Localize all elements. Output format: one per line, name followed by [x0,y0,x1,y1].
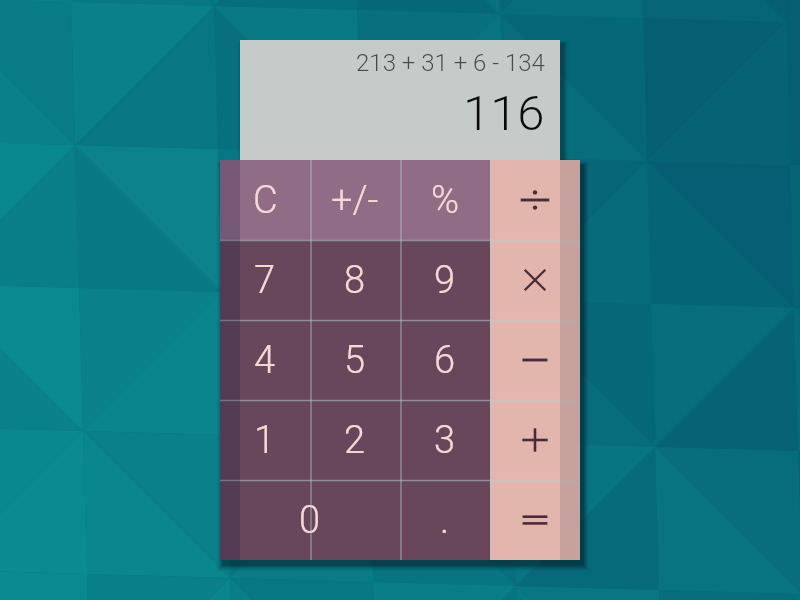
button[interactable]: Add [490,400,580,480]
button[interactable]: Divide [490,160,580,240]
staticText: % [431,178,460,223]
staticText: 6 [434,338,456,383]
button[interactable]: C [220,160,310,240]
button[interactable]: 6 [400,320,490,400]
button[interactable]: 0 [220,480,400,560]
button[interactable]: . [400,480,490,560]
staticText: 213 + 31 + 6 - 134 [356,49,545,77]
button[interactable]: Multiply [490,240,580,320]
staticText: . [440,498,450,543]
staticText: 1 [254,418,276,463]
staticText: 2 [344,418,366,463]
button[interactable]: 5 [310,320,400,400]
button[interactable]: 8 [310,240,400,320]
staticText: 7 [254,258,276,303]
staticText: +/- [331,178,379,223]
button[interactable]: +/- [310,160,400,240]
staticText: 4 [254,338,276,383]
button[interactable]: 7 [220,240,310,320]
button[interactable]: 9 [400,240,490,320]
staticText: 8 [344,258,366,303]
button[interactable]: Equals [490,480,580,560]
staticText: 3 [434,418,456,463]
button[interactable]: 4 [220,320,310,400]
button[interactable]: Subtract [490,320,580,400]
button[interactable]: % [400,160,490,240]
staticText: 116 [463,85,545,142]
button[interactable]: 1 [220,400,310,480]
staticText: 9 [434,258,456,303]
staticText: 0 [299,498,321,543]
button[interactable]: 2 [310,400,400,480]
staticText: 5 [344,338,366,383]
staticText: C [253,178,278,223]
button[interactable]: 3 [400,400,490,480]
